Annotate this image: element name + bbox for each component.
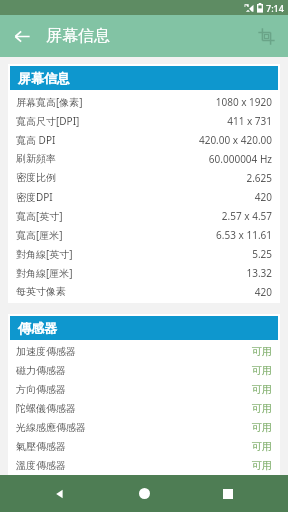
staticText: 411 x 731 xyxy=(227,114,272,128)
staticText: 7:14 xyxy=(266,2,284,14)
staticText: 磁力傳感器 xyxy=(16,364,66,377)
staticText: 6.53 x 11.61 xyxy=(216,228,272,242)
staticText: 13.32 xyxy=(246,266,272,280)
staticText: 寬高 DPI xyxy=(16,133,56,147)
staticText: 方向傳感器 xyxy=(16,383,66,396)
button[interactable]: Back xyxy=(6,20,38,52)
button[interactable]: 傳感器 xyxy=(10,316,278,340)
staticText: 420 xyxy=(254,190,272,204)
button[interactable]: 寬高[英寸] xyxy=(8,206,280,225)
button[interactable]: 密度比例 xyxy=(8,168,280,187)
staticText: 寬高尺寸[DPI] xyxy=(16,114,80,128)
button[interactable]: 溫度傳感器 xyxy=(8,456,280,475)
staticText: 可用 xyxy=(252,421,272,434)
button[interactable]: 方向傳感器 xyxy=(8,380,280,399)
staticText: 屏幕信息 xyxy=(46,26,110,46)
staticText: 1080 x 1920 xyxy=(215,95,272,109)
staticText: 加速度傳感器 xyxy=(16,345,76,358)
button[interactable]: Crop screenshot xyxy=(250,20,282,52)
staticText: 可用 xyxy=(252,402,272,415)
button[interactable]: 寬高尺寸[DPI] xyxy=(8,111,280,130)
staticText: 氣壓傳感器 xyxy=(16,440,66,453)
button[interactable]: Back xyxy=(36,475,84,512)
staticText: 2.57 x 4.57 xyxy=(221,209,272,223)
staticText: 可用 xyxy=(252,440,272,453)
staticText: 光線感應傳感器 xyxy=(16,421,86,434)
button[interactable]: 對角線[厘米] xyxy=(8,263,280,282)
staticText: 對角線[厘米] xyxy=(16,266,73,280)
staticText: 5.25 xyxy=(252,247,272,261)
button[interactable]: 寬高 DPI xyxy=(8,130,280,149)
staticText: 陀螺儀傳感器 xyxy=(16,402,76,415)
button[interactable]: 屏幕寬高[像素] xyxy=(8,92,280,111)
button[interactable]: 每英寸像素 xyxy=(8,282,280,301)
button[interactable]: Home xyxy=(120,475,168,512)
staticText: 60.000004 Hz xyxy=(208,152,272,166)
button[interactable]: 陀螺儀傳感器 xyxy=(8,399,280,418)
staticText: 屏幕寬高[像素] xyxy=(16,95,83,109)
button[interactable]: Recent apps xyxy=(204,475,252,512)
button[interactable]: 對角線[英寸] xyxy=(8,244,280,263)
staticText: 屏幕信息 xyxy=(18,70,70,86)
button[interactable]: 光線感應傳感器 xyxy=(8,418,280,437)
staticText: 密度DPI xyxy=(16,190,53,204)
staticText: 密度比例 xyxy=(16,171,56,184)
staticText: 可用 xyxy=(252,364,272,377)
button[interactable]: 磁力傳感器 xyxy=(8,361,280,380)
staticText: 420.00 x 420.00 xyxy=(198,133,272,147)
button[interactable]: 屏幕信息 xyxy=(10,66,278,90)
staticText: 可用 xyxy=(252,383,272,396)
staticText: 寬高[英寸] xyxy=(16,209,63,223)
button[interactable]: 密度DPI xyxy=(8,187,280,206)
button[interactable]: 寬高[厘米] xyxy=(8,225,280,244)
staticText: 每英寸像素 xyxy=(16,285,66,298)
button[interactable]: 加速度傳感器 xyxy=(8,342,280,361)
staticText: 對角線[英寸] xyxy=(16,247,73,261)
staticText: 溫度傳感器 xyxy=(16,459,66,472)
staticText: 2.625 xyxy=(246,171,272,185)
staticText: 傳感器 xyxy=(18,320,57,336)
staticText: 可用 xyxy=(252,459,272,472)
button[interactable]: 氣壓傳感器 xyxy=(8,437,280,456)
staticText: 寬高[厘米] xyxy=(16,228,63,242)
staticText: 刷新頻率 xyxy=(16,152,56,165)
staticText: 可用 xyxy=(252,345,272,358)
button[interactable]: 刷新頻率 xyxy=(8,149,280,168)
staticText: 420 xyxy=(254,285,272,299)
